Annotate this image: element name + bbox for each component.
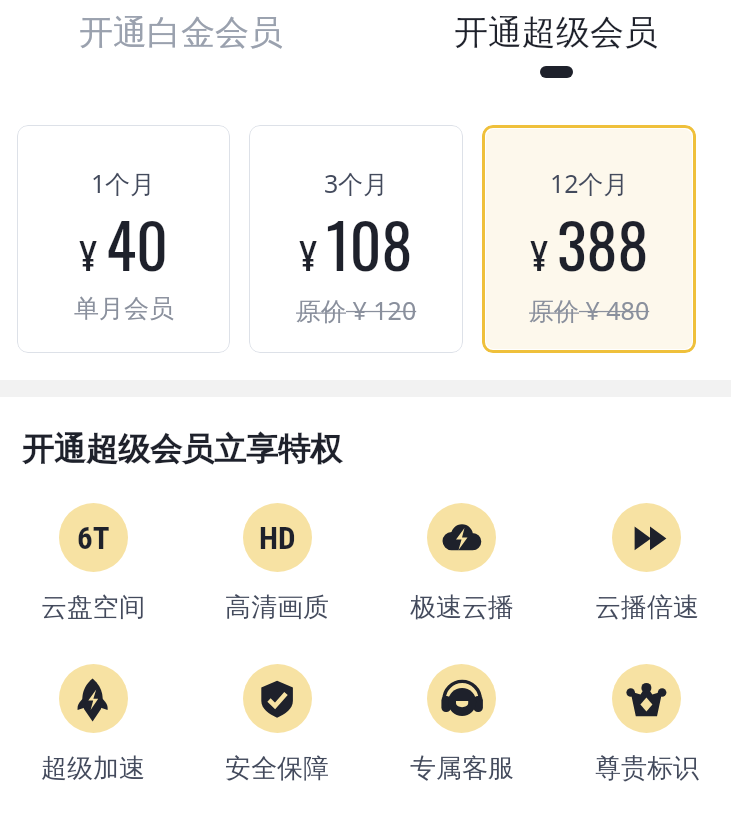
staticText: 原价 ¥ 480 — [529, 293, 650, 327]
staticText: 极速云播 — [410, 591, 514, 624]
staticText: 云盘空间 — [41, 591, 145, 624]
staticText: ¥ — [530, 226, 548, 282]
staticText: 安全保障 — [225, 752, 329, 785]
staticText: 超级加速 — [41, 752, 145, 785]
button[interactable]: 1个月 — [17, 125, 230, 353]
staticText: 6T — [77, 520, 110, 556]
button[interactable]: 开通白金会员 — [0, 0, 362, 66]
staticText: 108 — [326, 197, 413, 289]
button[interactable]: 超级加速 — [1, 664, 185, 785]
other: 尊贵标识 — [612, 664, 681, 733]
staticText: 开通超级会员 — [454, 11, 658, 54]
staticText: 开通超级会员立享特权 — [22, 429, 342, 469]
other: 超级加速 — [59, 664, 128, 733]
button[interactable]: 尊贵标识 — [554, 664, 731, 785]
other: 云播倍速 — [612, 503, 681, 572]
staticText: 专属客服 — [410, 752, 514, 785]
button[interactable]: 极速云播 — [369, 503, 554, 624]
button[interactable]: 云播倍速 — [554, 503, 731, 624]
staticText: ¥ — [299, 226, 317, 282]
button[interactable]: 12个月 — [482, 125, 696, 353]
button[interactable]: 专属客服 — [369, 664, 554, 785]
staticText: HD — [259, 520, 296, 556]
staticText: 12个月 — [550, 166, 629, 200]
other: 高清画质 — [243, 503, 312, 572]
staticText: 40 — [106, 197, 169, 289]
other: 安全保障 — [243, 664, 312, 733]
staticText: 3个月 — [324, 166, 389, 200]
button[interactable]: 高清画质 — [185, 503, 369, 624]
staticText: 开通白金会员 — [79, 11, 283, 54]
button[interactable]: 3个月 — [249, 125, 463, 353]
other: 云盘空间 — [59, 503, 128, 572]
staticText: 388 — [557, 197, 649, 289]
button[interactable]: 安全保障 — [185, 664, 369, 785]
staticText: 高清画质 — [225, 591, 329, 624]
staticText: 原价 ¥ 120 — [296, 293, 417, 327]
staticText: 单月会员 — [74, 293, 174, 324]
staticText: ¥ — [79, 226, 97, 282]
staticText: 云播倍速 — [595, 591, 699, 624]
staticText: 尊贵标识 — [595, 752, 699, 785]
other: 专属客服 — [427, 664, 496, 733]
button[interactable]: 开通超级会员 — [375, 0, 731, 78]
staticText: 1个月 — [91, 166, 156, 200]
other: 极速云播 — [427, 503, 496, 572]
button[interactable]: 云盘空间 — [1, 503, 185, 624]
